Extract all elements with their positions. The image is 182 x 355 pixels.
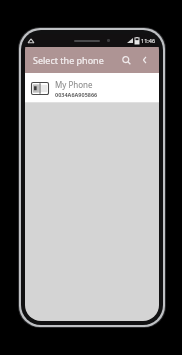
staticText: 0034A6A905866 <box>55 91 98 98</box>
staticText: 11:46 <box>141 37 156 44</box>
button[interactable]: My Phone <box>25 73 159 103</box>
button[interactable]: More options <box>136 51 154 69</box>
staticText: My Phone <box>55 79 93 90</box>
button[interactable]: Search <box>116 50 136 70</box>
staticText: Select the phone <box>33 54 104 66</box>
